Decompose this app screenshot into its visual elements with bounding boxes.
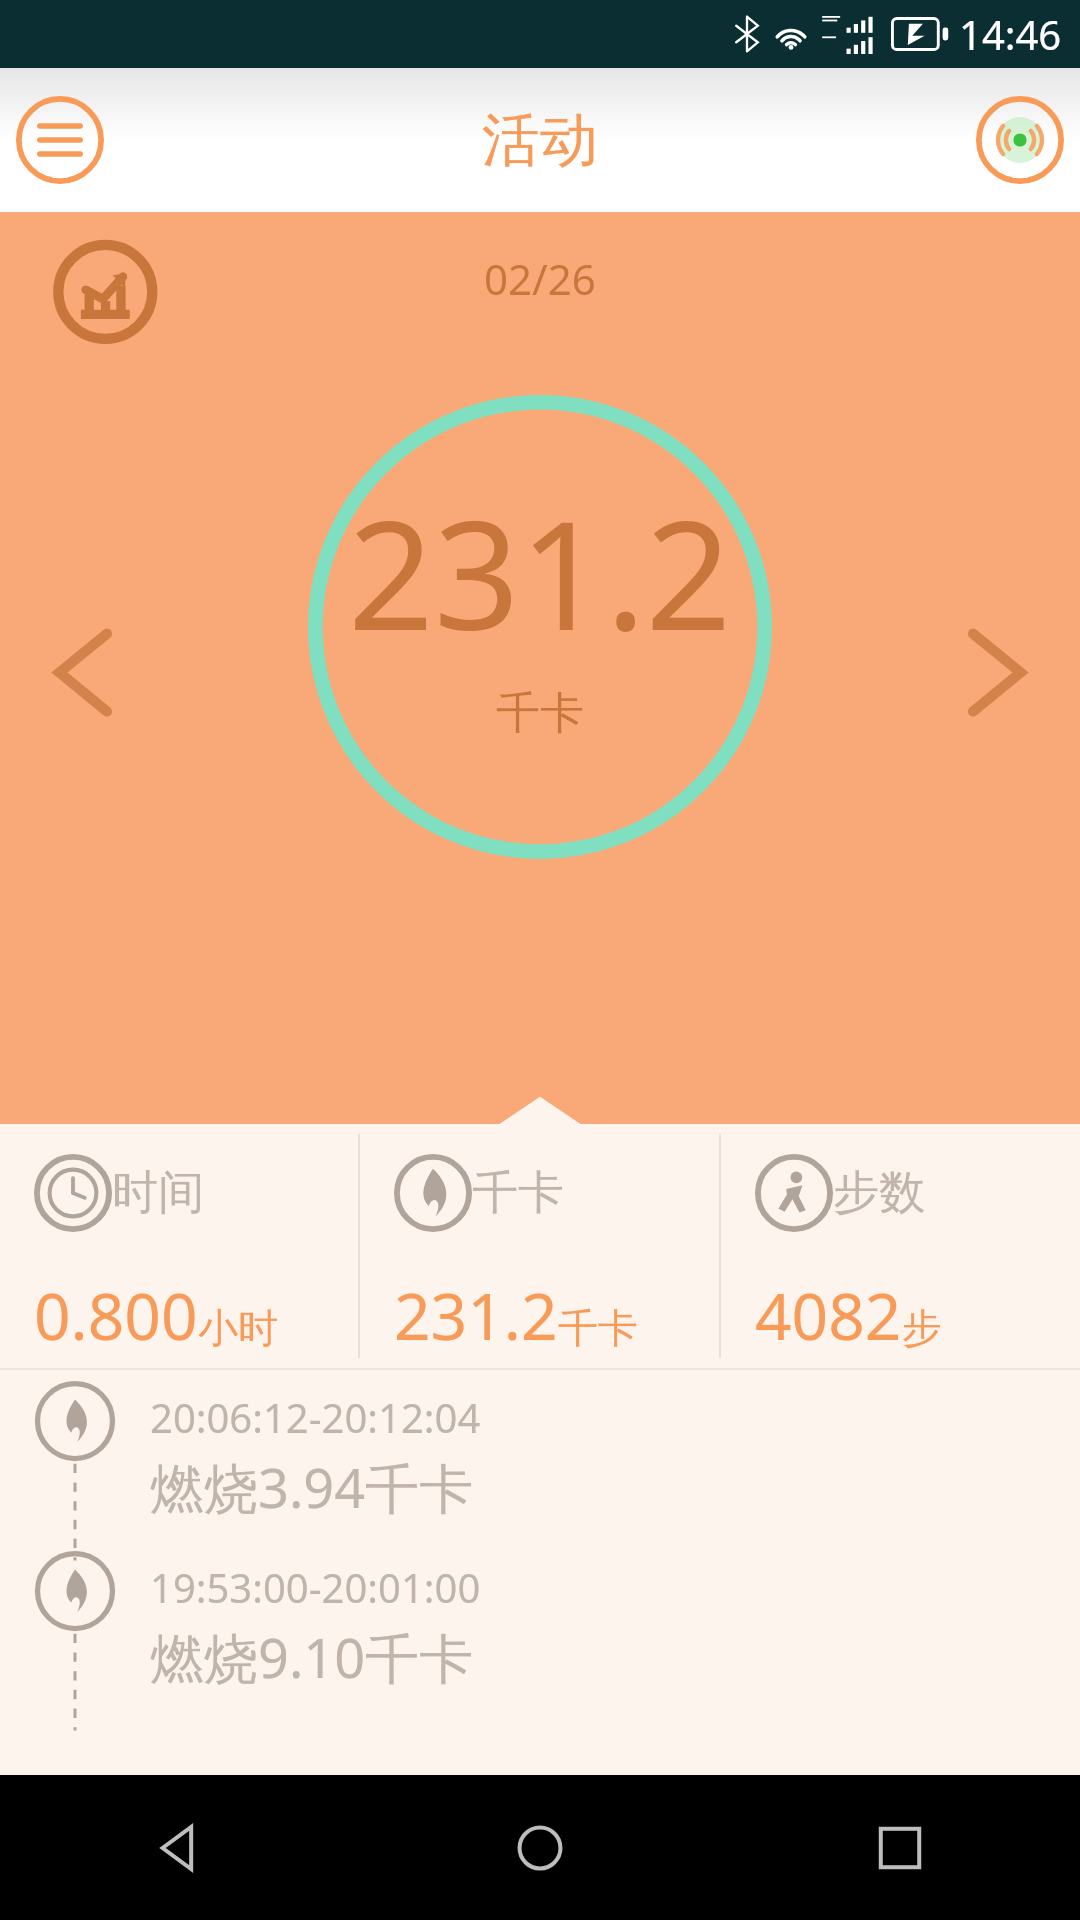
button[interactable]: Recents: [720, 1775, 1080, 1920]
staticText: 千卡: [496, 686, 584, 741]
staticText: 燃烧9.10千卡: [150, 1620, 474, 1694]
staticText: 20:06:12-20:12:04: [150, 1390, 481, 1444]
button[interactable]: 步数: [721, 1124, 1080, 1368]
staticText: 4082: [755, 1272, 902, 1359]
staticText: 小时: [198, 1303, 278, 1353]
button[interactable]: 19:53:00-20:01:00: [0, 1540, 1080, 1710]
staticText: 千卡: [472, 1164, 564, 1222]
button[interactable]: Menu: [14, 94, 106, 186]
staticText: 231.2: [348, 470, 732, 674]
button[interactable]: 时间: [0, 1124, 358, 1368]
staticText: 14:46: [959, 7, 1062, 61]
staticText: 千卡: [558, 1303, 638, 1353]
staticText: 步数: [833, 1164, 925, 1222]
button[interactable]: 千卡: [360, 1124, 719, 1368]
staticText: 时间: [112, 1164, 204, 1222]
staticText: 231.2: [394, 1272, 558, 1359]
button[interactable]: Back: [0, 1775, 360, 1920]
button[interactable]: 20:06:12-20:12:04: [0, 1370, 1080, 1540]
staticText: 步: [902, 1303, 942, 1353]
button[interactable]: Home: [360, 1775, 720, 1920]
button[interactable]: Sync device: [974, 94, 1066, 186]
staticText: 0.800: [34, 1272, 198, 1359]
staticText: 02/26: [484, 250, 596, 307]
staticText: 活动: [482, 104, 598, 177]
staticText: 19:53:00-20:01:00: [150, 1560, 481, 1614]
staticText: 燃烧3.94千卡: [150, 1450, 474, 1524]
